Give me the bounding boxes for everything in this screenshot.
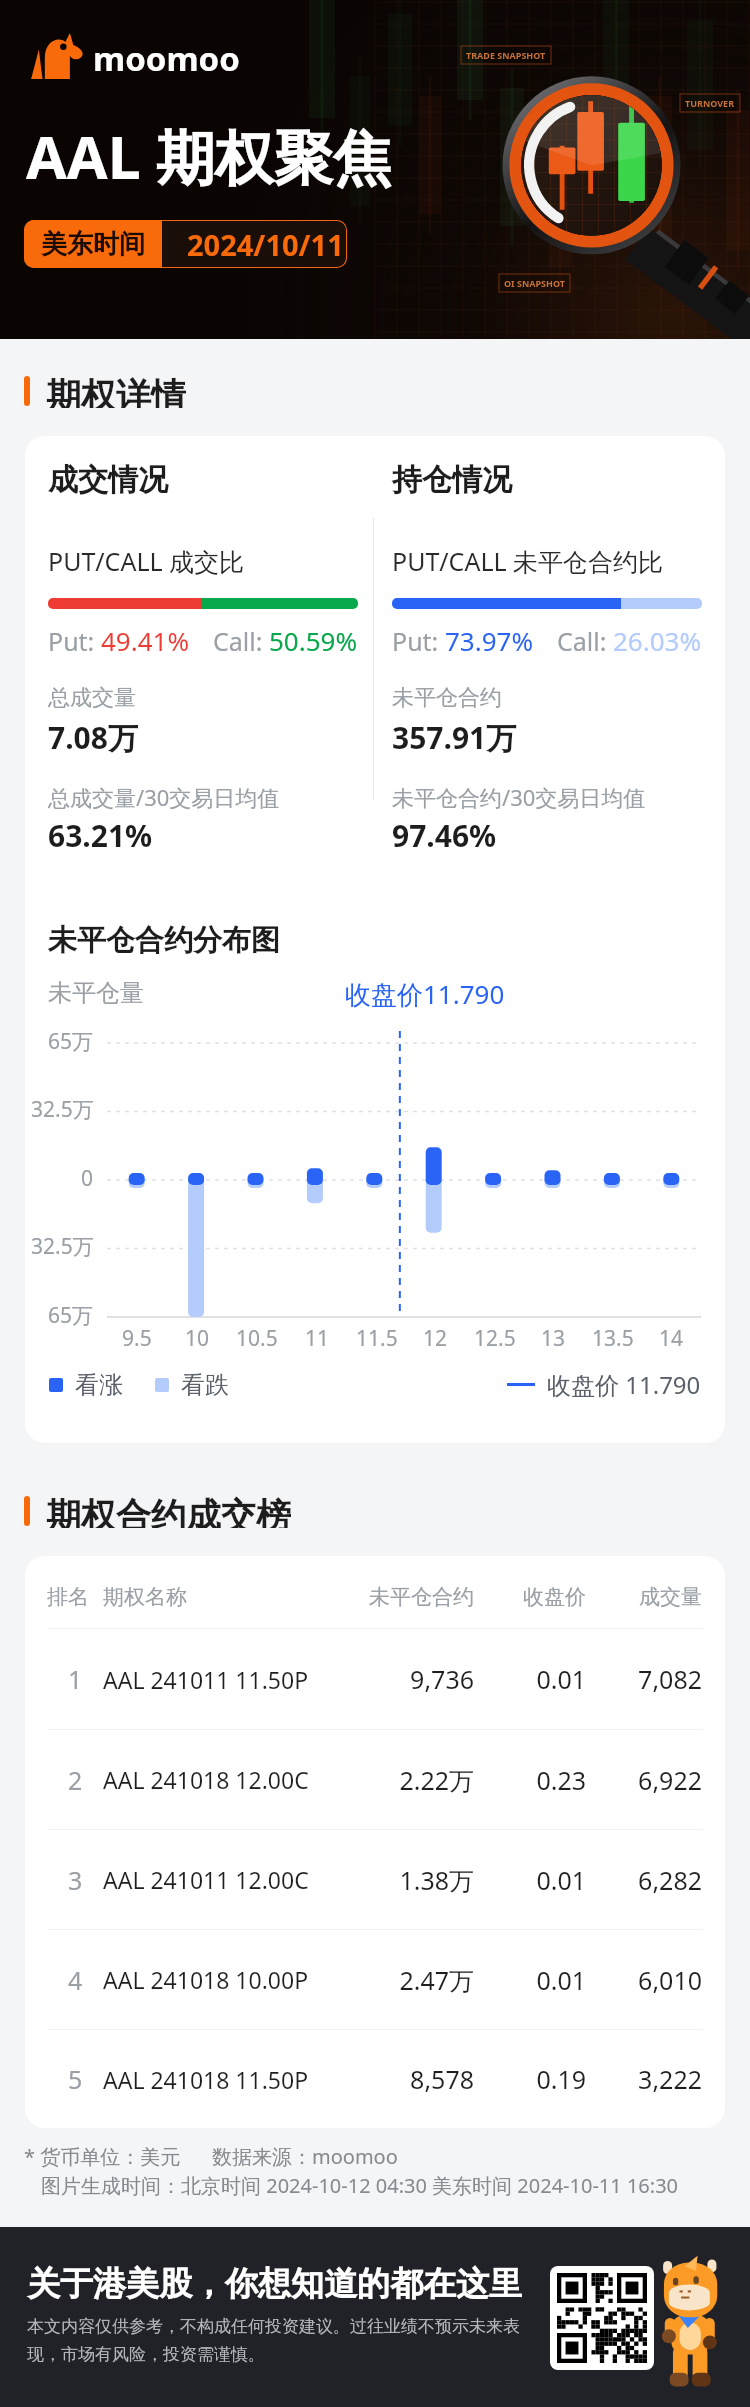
- staticText: 收盘价: [507, 1584, 586, 1610]
- staticText: 未平仓合约: [392, 684, 502, 712]
- staticText: Put:: [392, 624, 445, 658]
- staticText: 32.5万: [31, 1232, 94, 1261]
- staticText: 7,082: [621, 1662, 702, 1696]
- staticText: Call:: [557, 624, 613, 658]
- staticText: 0.23: [507, 1763, 586, 1797]
- staticText: PUT/CALL 未平仓合约比: [392, 544, 664, 578]
- staticText: 11.5: [356, 1324, 398, 1353]
- staticText: 2.47万: [347, 1963, 474, 1997]
- staticText: TRADE SNAPSHOT: [466, 49, 546, 61]
- staticText: 9,736: [347, 1662, 474, 1696]
- staticText: 73.97%: [445, 623, 534, 658]
- staticText: 现，市场有风险，投资需谨慎。: [27, 2344, 265, 2365]
- staticText: 3: [68, 1863, 83, 1897]
- staticText: AAL 241018 11.50P: [103, 2064, 309, 2095]
- staticText: 13: [541, 1324, 566, 1353]
- staticText: 6,010: [621, 1963, 702, 1997]
- staticText: AAL 241011 12.00C: [103, 1864, 309, 1895]
- button[interactable]: QR code: [550, 2266, 654, 2370]
- staticText: 97.46%: [392, 815, 497, 856]
- staticText: 未平仓合约分布图: [48, 922, 280, 959]
- staticText: 11: [305, 1324, 330, 1353]
- staticText: 成交情况: [48, 461, 168, 499]
- staticText: 持仓情况: [392, 461, 512, 499]
- staticText: 12: [423, 1324, 448, 1353]
- staticText: 数据来源：moomoo: [212, 2143, 398, 2170]
- other: moomoo logo: [30, 33, 87, 83]
- button[interactable]: 5: [25, 2030, 725, 2128]
- other: Options snapshot illustration: [470, 57, 740, 315]
- staticText: 期权合约成交榜: [46, 1494, 291, 1528]
- staticText: 看涨: [75, 1370, 123, 1400]
- staticText: 期权名称: [103, 1584, 187, 1610]
- staticText: 收盘价 11.790: [547, 1368, 701, 1401]
- staticText: 未平仓合约: [347, 1584, 474, 1610]
- staticText: 8,578: [347, 2062, 474, 2096]
- staticText: 0.01: [507, 1863, 586, 1897]
- staticText: 总成交量/30交易日均值: [48, 782, 280, 812]
- staticText: 收盘价11.790: [345, 976, 505, 1012]
- staticText: 65万: [48, 1027, 94, 1056]
- staticText: 6,922: [621, 1763, 702, 1797]
- staticText: 5: [68, 2062, 83, 2096]
- staticText: AAL 期权聚焦: [26, 116, 392, 197]
- staticText: 0.19: [507, 2062, 586, 2096]
- staticText: 成交量: [621, 1584, 702, 1610]
- staticText: 总成交量: [48, 684, 136, 712]
- staticText: 0.01: [507, 1963, 586, 1997]
- button[interactable]: 1: [25, 1629, 725, 1729]
- staticText: 看跌: [181, 1370, 229, 1400]
- staticText: 美东时间: [41, 228, 145, 261]
- staticText: 9.5: [122, 1324, 152, 1353]
- staticText: 26.03%: [613, 623, 702, 658]
- staticText: 期权详情: [46, 374, 186, 408]
- staticText: 1.38万: [347, 1863, 474, 1897]
- staticText: 63.21%: [48, 815, 153, 856]
- staticText: AAL 241018 12.00C: [103, 1764, 309, 1795]
- staticText: 7.08万: [48, 717, 138, 758]
- staticText: 49.41%: [101, 623, 190, 658]
- staticText: 关于港美股，你想知道的都在这里: [27, 2263, 522, 2305]
- button[interactable]: 4: [25, 1930, 725, 2029]
- staticText: 0: [81, 1164, 94, 1193]
- other: moomoo mascot: [650, 2239, 732, 2391]
- staticText: 32.5万: [31, 1095, 94, 1124]
- staticText: 13.5: [592, 1324, 634, 1353]
- staticText: 3,222: [621, 2062, 702, 2096]
- staticText: 0.01: [507, 1662, 586, 1696]
- staticText: 2.22万: [347, 1763, 474, 1797]
- staticText: AAL 241018 10.00P: [103, 1964, 309, 1995]
- button[interactable]: 美东时间: [24, 220, 347, 268]
- staticText: 10.5: [236, 1324, 278, 1353]
- staticText: 本文内容仅供参考，不构成任何投资建议。过往业绩不预示未来表: [27, 2316, 520, 2337]
- staticText: 未平仓量: [48, 978, 144, 1008]
- staticText: PUT/CALL 成交比: [48, 544, 245, 578]
- staticText: 50.59%: [269, 623, 358, 658]
- staticText: 未平仓合约/30交易日均值: [392, 782, 646, 812]
- staticText: 1: [68, 1662, 83, 1696]
- staticText: * 货币单位：美元: [24, 2143, 181, 2170]
- staticText: 10: [185, 1324, 210, 1353]
- staticText: 14: [659, 1324, 684, 1353]
- staticText: 图片生成时间：北京时间 2024-10-12 04:30 美东时间 2024-1…: [41, 2172, 679, 2199]
- staticText: 4: [68, 1963, 83, 1997]
- staticText: TURNOVER: [685, 97, 735, 109]
- staticText: 65万: [48, 1301, 94, 1330]
- button[interactable]: 3: [25, 1830, 725, 1929]
- staticText: OI SNAPSHOT: [504, 277, 565, 289]
- staticText: 2024/10/11: [187, 225, 344, 264]
- staticText: Call:: [213, 624, 269, 658]
- staticText: 2: [68, 1763, 83, 1797]
- staticText: Put:: [48, 624, 101, 658]
- staticText: 12.5: [474, 1324, 516, 1353]
- staticText: 6,282: [621, 1863, 702, 1897]
- staticText: moomoo: [93, 36, 240, 81]
- staticText: 357.91万: [392, 717, 517, 758]
- staticText: 排名: [47, 1584, 89, 1610]
- staticText: AAL 241011 11.50P: [103, 1664, 309, 1695]
- button[interactable]: 2: [25, 1730, 725, 1829]
